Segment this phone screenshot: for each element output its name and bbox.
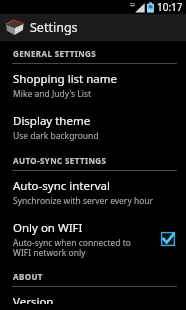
- staticText: ABOUT: [13, 271, 43, 282]
- button[interactable]: App icon: [0, 14, 186, 41]
- staticText: Display theme: [13, 113, 91, 129]
- staticText: Auto-sync interval: [13, 178, 110, 194]
- button[interactable]: Display theme: [0, 106, 186, 148]
- button[interactable]: Only on WIFI: [0, 213, 186, 264]
- staticText: Version: [13, 294, 54, 304]
- button[interactable]: Auto-sync interval: [0, 171, 186, 213]
- staticText: Settings: [30, 19, 78, 36]
- staticText: Synchronize with server every hour: [13, 195, 154, 207]
- button[interactable]: Shopping list name: [0, 64, 186, 106]
- staticText: Only on WIFI: [13, 220, 83, 236]
- staticText: 10:17: [157, 0, 183, 14]
- staticText: Use dark background: [13, 130, 99, 142]
- button[interactable]: Version: [0, 287, 186, 310]
- staticText: GENERAL SETTINGS: [13, 48, 97, 59]
- staticText: AUTO-SYNC SETTINGS: [13, 155, 107, 166]
- staticText: Mike and Judy's List: [13, 88, 92, 100]
- other: App icon: [4, 17, 25, 38]
- button[interactable]: Only on WIFI checkbox: [160, 231, 176, 247]
- staticText: Auto-sync when connected to WIFI network…: [13, 237, 131, 258]
- staticText: Shopping list name: [13, 71, 118, 87]
